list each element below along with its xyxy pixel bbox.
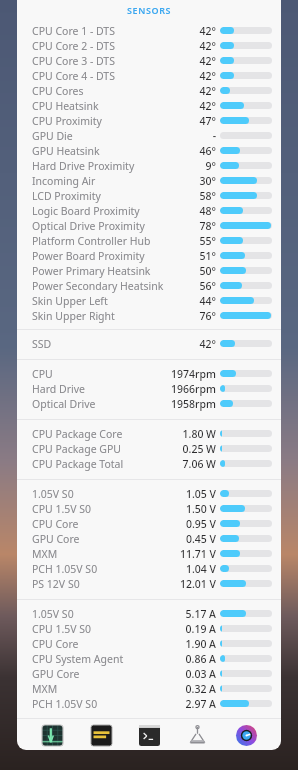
- button[interactable]: CPU Package Total: [17, 456, 281, 471]
- button[interactable]: PS 12V S0: [17, 576, 281, 591]
- button[interactable]: CPU Core 4 - DTS: [17, 68, 281, 83]
- button[interactable]: Activity Monitor: [39, 722, 65, 748]
- staticText: 5.17 A: [185, 607, 216, 621]
- staticText: GPU Heatsink: [32, 144, 100, 158]
- button[interactable]: Diagnostics: [184, 722, 210, 748]
- staticText: CPU 1.5V S0: [32, 622, 92, 636]
- button[interactable]: 1.05V S0: [17, 606, 281, 621]
- button[interactable]: Hard Drive: [17, 381, 281, 396]
- staticText: Power Primary Heatsink: [32, 264, 151, 278]
- button[interactable]: Terminal: [136, 722, 162, 748]
- button[interactable]: Power Secondary Heatsink: [17, 278, 281, 293]
- button[interactable]: Incoming Air: [17, 173, 281, 188]
- staticText: 48°: [199, 204, 216, 218]
- staticText: CPU Core 2 - DTS: [32, 39, 115, 53]
- staticText: PS 12V S0: [32, 577, 80, 591]
- staticText: 42°: [199, 39, 216, 53]
- staticText: 2.97 A: [185, 697, 216, 711]
- button[interactable]: CPU Package GPU: [17, 441, 281, 456]
- button[interactable]: 1.05V S0: [17, 486, 281, 501]
- button[interactable]: Platform Controller Hub: [17, 233, 281, 248]
- button[interactable]: CPU 1.5V S0: [17, 621, 281, 636]
- button[interactable]: GPU Die: [17, 128, 281, 143]
- staticText: 1.05V S0: [32, 487, 74, 501]
- staticText: 1.05 V: [185, 487, 216, 501]
- staticText: CPU 1.5V S0: [32, 502, 92, 516]
- staticText: LCD Proximity: [32, 189, 101, 203]
- staticText: Power Board Proximity: [32, 249, 145, 263]
- staticText: 1974rpm: [171, 367, 216, 381]
- button[interactable]: Skin Upper Left: [17, 293, 281, 308]
- button[interactable]: CPU Core 3 - DTS: [17, 53, 281, 68]
- staticText: CPU Heatsink: [32, 99, 99, 113]
- button[interactable]: Skin Upper Right: [17, 308, 281, 323]
- staticText: 0.19 A: [185, 622, 216, 636]
- staticText: Optical Drive Proximity: [32, 219, 145, 233]
- staticText: MXM: [32, 547, 58, 561]
- button[interactable]: CPU Core 1 - DTS: [17, 23, 281, 38]
- staticText: PCH 1.05V S0: [32, 562, 98, 576]
- button[interactable]: Logic Board Proximity: [17, 203, 281, 218]
- button[interactable]: CPU Core: [17, 516, 281, 531]
- staticText: Power Secondary Heatsink: [32, 279, 164, 293]
- button[interactable]: GPU Core: [17, 531, 281, 546]
- staticText: CPU: [32, 367, 53, 381]
- button[interactable]: CPU 1.5V S0: [17, 501, 281, 516]
- staticText: Platform Controller Hub: [32, 234, 151, 248]
- button[interactable]: Optical Drive Proximity: [17, 218, 281, 233]
- staticText: CPU Core 3 - DTS: [32, 54, 115, 68]
- staticText: SSD: [32, 337, 52, 351]
- button[interactable]: MXM: [17, 546, 281, 561]
- button[interactable]: GPU Heatsink: [17, 143, 281, 158]
- button[interactable]: CPU Heatsink: [17, 98, 281, 113]
- button[interactable]: CPU Cores: [17, 83, 281, 98]
- button[interactable]: Optical Drive: [17, 396, 281, 411]
- button[interactable]: CPU: [17, 366, 281, 381]
- button[interactable]: LCD Proximity: [17, 188, 281, 203]
- staticText: 42°: [199, 99, 216, 113]
- staticText: 11.71 V: [179, 547, 216, 561]
- staticText: 50°: [199, 264, 216, 278]
- button[interactable]: PCH 1.05V S0: [17, 696, 281, 711]
- button[interactable]: Power Board Proximity: [17, 248, 281, 263]
- button[interactable]: Power Primary Heatsink: [17, 263, 281, 278]
- button[interactable]: SSD: [17, 336, 281, 351]
- staticText: CPU Proximity: [32, 114, 102, 128]
- button[interactable]: CPU System Agent: [17, 651, 281, 666]
- button[interactable]: CPU Core 2 - DTS: [17, 38, 281, 53]
- staticText: 1966rpm: [171, 382, 216, 396]
- staticText: Hard Drive Proximity: [32, 159, 135, 173]
- staticText: CPU Package GPU: [32, 442, 121, 456]
- button[interactable]: PCH 1.05V S0: [17, 561, 281, 576]
- staticText: 9°: [205, 159, 216, 173]
- button[interactable]: MXM: [17, 681, 281, 696]
- staticText: 1.05V S0: [32, 607, 74, 621]
- staticText: 1.80 W: [182, 427, 216, 441]
- staticText: 58°: [199, 189, 216, 203]
- staticText: 1958rpm: [171, 397, 216, 411]
- staticText: Hard Drive: [32, 382, 85, 396]
- staticText: Optical Drive: [32, 397, 96, 411]
- staticText: Logic Board Proximity: [32, 204, 140, 218]
- button[interactable]: Settings: [233, 722, 259, 748]
- button[interactable]: CPU Package Core: [17, 426, 281, 441]
- staticText: 46°: [199, 144, 216, 158]
- staticText: 44°: [199, 294, 216, 308]
- staticText: CPU Cores: [32, 84, 84, 98]
- staticText: CPU System Agent: [32, 652, 124, 666]
- staticText: 30°: [199, 174, 216, 188]
- staticText: 55°: [199, 234, 216, 248]
- button[interactable]: CPU Proximity: [17, 113, 281, 128]
- button[interactable]: Warranty: [88, 722, 114, 748]
- staticText: 42°: [199, 24, 216, 38]
- staticText: 0.03 A: [185, 667, 216, 681]
- staticText: 0.95 V: [185, 517, 216, 531]
- staticText: CPU Core: [32, 637, 79, 651]
- button[interactable]: CPU Core: [17, 636, 281, 651]
- staticText: 56°: [199, 279, 216, 293]
- staticText: CPU Package Total: [32, 457, 124, 471]
- staticText: SENSORS: [127, 4, 172, 16]
- button[interactable]: GPU Core: [17, 666, 281, 681]
- button[interactable]: Hard Drive Proximity: [17, 158, 281, 173]
- staticText: CPU Core: [32, 517, 79, 531]
